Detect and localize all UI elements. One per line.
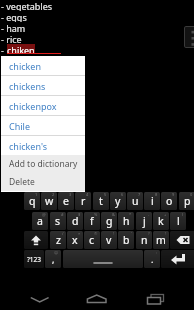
button[interactable]: f [84, 212, 100, 230]
staticText: ? [148, 231, 150, 236]
button[interactable]: More options [184, 26, 194, 48]
button[interactable]: n [136, 231, 152, 249]
button[interactable]: j [136, 212, 152, 230]
button[interactable]: chicken's [1, 136, 85, 155]
button[interactable]: Add to dictionary [1, 155, 85, 173]
button[interactable]: x [67, 231, 83, 249]
staticText: . [151, 253, 154, 265]
button[interactable]: c [84, 231, 100, 249]
staticText: ! [113, 231, 115, 236]
staticText: h [123, 214, 130, 228]
button[interactable]: Backspace [170, 231, 194, 249]
button[interactable]: z [50, 231, 66, 249]
staticText: c [89, 233, 95, 247]
button[interactable]: Recents [141, 288, 169, 310]
button[interactable]: i [144, 192, 160, 210]
button[interactable]: Space [63, 250, 143, 268]
button[interactable]: y [110, 192, 126, 210]
staticText: ' [131, 231, 132, 236]
staticText: i [151, 194, 154, 208]
staticText: # [61, 212, 64, 217]
staticText: e [63, 194, 69, 208]
staticText: - vegetables [1, 0, 53, 11]
staticText: 6 [121, 192, 124, 197]
button[interactable]: m [153, 231, 169, 249]
staticText: * [129, 212, 132, 217]
button[interactable]: chickenpox [1, 96, 85, 115]
staticText: t [99, 194, 103, 208]
staticText: q [29, 194, 36, 208]
button[interactable]: ?123 [24, 250, 44, 268]
staticText: u [132, 194, 139, 208]
button[interactable]: s [50, 212, 66, 230]
button[interactable]: h [118, 212, 134, 230]
button[interactable]: p [179, 192, 194, 210]
button[interactable]: w [41, 192, 57, 210]
staticText: ☺ [54, 250, 59, 255]
button[interactable]: v [101, 231, 117, 249]
staticText: 4 [86, 192, 89, 197]
button[interactable]: Delete [1, 173, 85, 191]
button[interactable]: Chile [1, 116, 85, 135]
staticText: - [148, 212, 150, 217]
staticText: % [94, 212, 98, 217]
staticText: chicken's [9, 140, 47, 152]
staticText: ( [182, 212, 184, 217]
staticText: Delete [9, 176, 35, 188]
button[interactable]: . [144, 250, 160, 268]
staticText: 5 [104, 192, 107, 197]
button[interactable]: k [153, 212, 169, 230]
button[interactable]: Shift [24, 231, 48, 249]
button[interactable]: q [24, 192, 40, 210]
staticText: 1 [35, 192, 38, 197]
button[interactable]: u [127, 192, 143, 210]
button[interactable]: l [170, 212, 186, 230]
staticText: @ [42, 212, 46, 217]
staticText: d [72, 214, 79, 228]
staticText: k [158, 214, 164, 228]
button[interactable]: b [118, 231, 134, 249]
staticText: a [37, 214, 43, 228]
staticText: 0 [190, 192, 193, 197]
button[interactable]: o [161, 192, 177, 210]
staticText: z [56, 233, 61, 247]
staticText: : [156, 250, 158, 255]
staticText: chickens [9, 80, 46, 92]
staticText: 2 [52, 192, 55, 197]
staticText: r [81, 194, 86, 208]
button[interactable]: r [75, 192, 91, 210]
staticText: 3 [69, 192, 72, 197]
staticText: o [166, 194, 173, 208]
button[interactable]: t [93, 192, 109, 210]
staticText: 8 [155, 192, 158, 197]
button[interactable]: Back [26, 288, 54, 310]
staticText: / [62, 231, 64, 236]
button[interactable]: , [45, 250, 61, 268]
staticText: 7 [138, 192, 141, 197]
staticText: - eggs [1, 11, 27, 22]
staticText: © [94, 231, 98, 236]
staticText: - [1, 44, 7, 55]
staticText: s [55, 214, 61, 228]
staticText: 9 [172, 192, 175, 197]
button[interactable]: Enter [161, 250, 194, 268]
staticText: w [45, 194, 54, 208]
staticText: Chile [9, 120, 30, 132]
button[interactable]: e [58, 192, 74, 210]
staticText: b [123, 233, 130, 247]
button[interactable]: chickens [1, 76, 85, 95]
staticText: , [52, 253, 55, 265]
staticText: $ [78, 212, 81, 217]
staticText: l [177, 214, 180, 228]
staticText: & [112, 212, 115, 217]
button[interactable]: chicken [1, 56, 85, 75]
staticText: n [141, 233, 148, 247]
button[interactable]: Home [83, 288, 111, 310]
staticText: chiken [7, 44, 35, 53]
button[interactable]: a [32, 212, 48, 230]
staticText: y [115, 194, 121, 208]
button[interactable]: g [101, 212, 117, 230]
staticText: g [106, 214, 113, 228]
button[interactable]: d [67, 212, 83, 230]
staticText: chickenpox [9, 100, 57, 112]
